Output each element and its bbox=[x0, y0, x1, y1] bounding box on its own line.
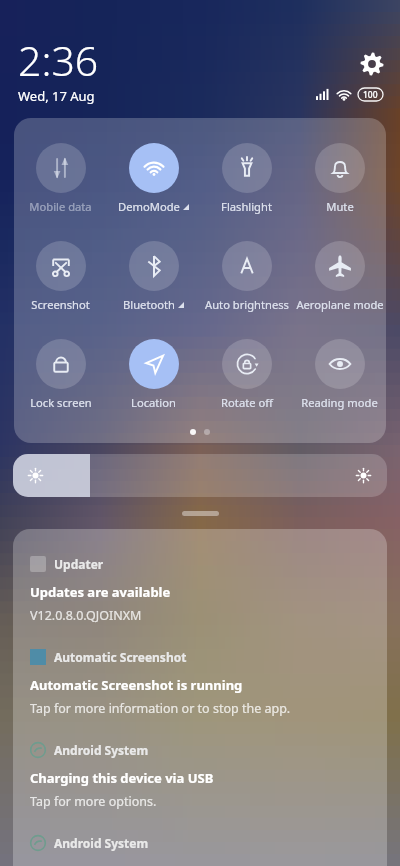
staticText: Updater bbox=[54, 556, 104, 572]
staticText: Charging this device via USB bbox=[30, 769, 214, 787]
staticText: V12.0.8.0.QJOINXM bbox=[30, 607, 142, 624]
staticText: 2:36 bbox=[18, 32, 99, 88]
button[interactable]: Automatic Screenshot bbox=[13, 645, 387, 738]
staticText: Wed, 17 Aug bbox=[18, 87, 95, 105]
staticText: Auto brightness bbox=[205, 297, 289, 312]
button[interactable]: Brightness bbox=[13, 454, 387, 497]
staticText: Mute bbox=[326, 199, 354, 214]
staticText: Automatic Screenshot is running bbox=[30, 676, 243, 694]
button[interactable]: Updater bbox=[13, 552, 387, 645]
staticText: Tap for more information or to stop the … bbox=[30, 700, 291, 717]
staticText: Rotate off bbox=[221, 395, 273, 410]
button[interactable]: Reading mode bbox=[293, 326, 386, 410]
button[interactable]: Rotate off bbox=[200, 326, 293, 410]
staticText: Location bbox=[131, 395, 176, 410]
staticText: Flashlight bbox=[221, 199, 272, 214]
button[interactable]: Screenshot bbox=[14, 228, 107, 312]
staticText: Screenshot bbox=[31, 297, 90, 312]
button[interactable]: Bluetooth bbox=[107, 228, 200, 312]
staticText: Bluetooth bbox=[123, 297, 175, 312]
button[interactable]: Location bbox=[107, 326, 200, 410]
staticText: Tap for more options. bbox=[30, 793, 157, 810]
button[interactable]: Mobile data bbox=[14, 130, 107, 214]
button[interactable]: Auto brightness bbox=[200, 228, 293, 312]
staticText: Reading mode bbox=[301, 395, 378, 410]
staticText: Android System bbox=[54, 835, 149, 851]
button[interactable]: Android System bbox=[13, 831, 387, 866]
staticText: Mobile data bbox=[29, 199, 92, 214]
button[interactable]: Flashlight bbox=[200, 130, 293, 214]
button[interactable]: Mute bbox=[293, 130, 386, 214]
staticText: Lock screen bbox=[30, 395, 92, 410]
button[interactable]: Aeroplane mode bbox=[293, 228, 386, 312]
staticText: Automatic Screenshot bbox=[54, 649, 187, 665]
staticText: Updates are available bbox=[30, 583, 171, 601]
staticText: DemoMode bbox=[118, 199, 180, 214]
button[interactable]: Settings bbox=[358, 50, 386, 78]
button[interactable]: Lock screen bbox=[14, 326, 107, 410]
button[interactable]: DemoMode bbox=[107, 130, 200, 214]
staticText: Aeroplane mode bbox=[296, 297, 384, 312]
staticText: Android System bbox=[54, 742, 149, 758]
button[interactable]: Android System bbox=[13, 738, 387, 831]
staticText: 100 bbox=[363, 89, 378, 101]
